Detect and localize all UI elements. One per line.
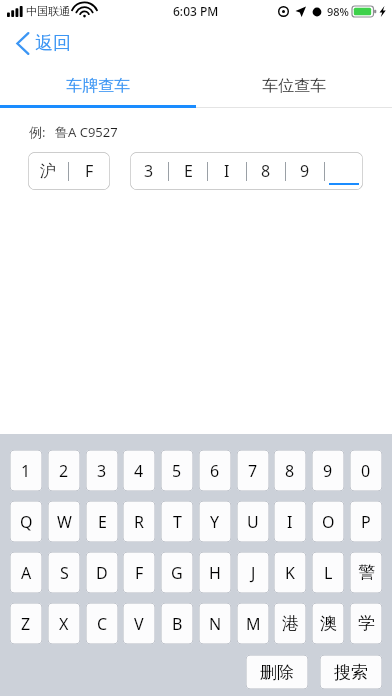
staticText: 5 (172, 460, 182, 482)
staticText: 鲁A C9527 (55, 123, 118, 141)
button[interactable]: F (69, 152, 110, 190)
button[interactable]: 8 (274, 450, 306, 491)
staticText: X (59, 613, 69, 635)
button[interactable]: 3 (86, 450, 118, 491)
staticText: C (97, 613, 108, 635)
button[interactable]: O (312, 501, 344, 542)
button[interactable]: 沪 (28, 152, 68, 190)
button[interactable]: 8 (247, 152, 285, 190)
staticText: 返回 (35, 32, 71, 55)
button[interactable]: Back (12, 28, 75, 59)
other: Back (16, 32, 30, 55)
button[interactable]: M (237, 603, 269, 644)
staticText: Y (210, 511, 220, 533)
button[interactable]: 学 (350, 603, 382, 644)
staticText: D (96, 562, 108, 584)
staticText: 警 (358, 562, 375, 583)
staticText: 删除 (260, 662, 294, 683)
button[interactable]: P (350, 501, 382, 542)
staticText: 澳 (320, 613, 337, 634)
button[interactable]: 删除 (246, 655, 308, 689)
button[interactable]: 0 (350, 450, 382, 491)
staticText: 4 (134, 460, 144, 482)
button[interactable]: K (274, 552, 306, 593)
staticText: 1 (21, 460, 31, 482)
button[interactable] (325, 152, 363, 190)
staticText: 例: (29, 123, 46, 141)
button[interactable]: 警 (350, 552, 382, 593)
button[interactable]: E (86, 501, 118, 542)
staticText: 7 (248, 460, 258, 482)
staticText: R (134, 511, 144, 533)
staticText: J (251, 562, 256, 584)
staticText: 8 (285, 460, 295, 482)
button[interactable]: S (48, 552, 80, 593)
staticText: S (60, 562, 69, 584)
staticText: 98% (327, 4, 349, 19)
button[interactable]: 港 (274, 603, 306, 644)
button[interactable]: A (10, 552, 42, 593)
staticText: W (57, 511, 72, 533)
button[interactable]: D (86, 552, 118, 593)
button[interactable]: L (312, 552, 344, 593)
button[interactable]: 车牌查车 (0, 64, 196, 108)
button[interactable]: I (208, 152, 246, 190)
button[interactable]: G (161, 552, 193, 593)
button[interactable]: T (161, 501, 193, 542)
button[interactable]: Y (199, 501, 231, 542)
button[interactable]: 澳 (312, 603, 344, 644)
staticText: E (184, 160, 193, 182)
button[interactable]: 1 (10, 450, 42, 491)
staticText: 学 (358, 613, 375, 634)
button[interactable]: Q (10, 501, 42, 542)
staticText: P (361, 511, 371, 533)
button[interactable]: 5 (161, 450, 193, 491)
button[interactable]: 车位查车 (196, 64, 392, 108)
button[interactable]: Z (10, 603, 42, 644)
staticText: N (209, 613, 222, 635)
button[interactable]: U (237, 501, 269, 542)
button[interactable]: R (123, 501, 155, 542)
staticText: 中国联通 (26, 4, 70, 18)
button[interactable]: H (199, 552, 231, 593)
button[interactable]: 9 (312, 450, 344, 491)
staticText: O (322, 511, 335, 533)
staticText: 8 (261, 160, 271, 182)
button[interactable]: N (199, 603, 231, 644)
button[interactable]: 7 (237, 450, 269, 491)
button[interactable]: C (86, 603, 118, 644)
button[interactable]: 3 (130, 152, 168, 190)
staticText: 0 (361, 460, 371, 482)
staticText: M (246, 613, 261, 635)
staticText: 9 (300, 160, 310, 182)
button[interactable]: X (48, 603, 80, 644)
button[interactable]: 9 (286, 152, 324, 190)
button[interactable]: B (161, 603, 193, 644)
staticText: 6:03 PM (173, 3, 219, 19)
staticText: 搜索 (334, 662, 368, 683)
staticText: L (324, 562, 333, 584)
button[interactable]: 6 (199, 450, 231, 491)
button[interactable]: I (274, 501, 306, 542)
staticText: I (224, 160, 230, 182)
button[interactable]: W (48, 501, 80, 542)
staticText: 9 (323, 460, 333, 482)
button[interactable]: E (169, 152, 207, 190)
staticText: E (98, 511, 107, 533)
staticText: H (209, 562, 221, 584)
staticText: Z (21, 613, 31, 635)
button[interactable]: J (237, 552, 269, 593)
staticText: 港 (282, 613, 299, 634)
staticText: F (135, 562, 144, 584)
staticText: F (85, 160, 94, 182)
button[interactable]: 2 (48, 450, 80, 491)
button[interactable]: V (123, 603, 155, 644)
staticText: G (171, 562, 183, 584)
button[interactable]: 搜索 (320, 655, 382, 689)
staticText: K (285, 562, 295, 584)
staticText: 3 (144, 160, 154, 182)
staticText: U (247, 511, 259, 533)
button[interactable]: F (123, 552, 155, 593)
staticText: 3 (97, 460, 107, 482)
button[interactable]: 4 (123, 450, 155, 491)
